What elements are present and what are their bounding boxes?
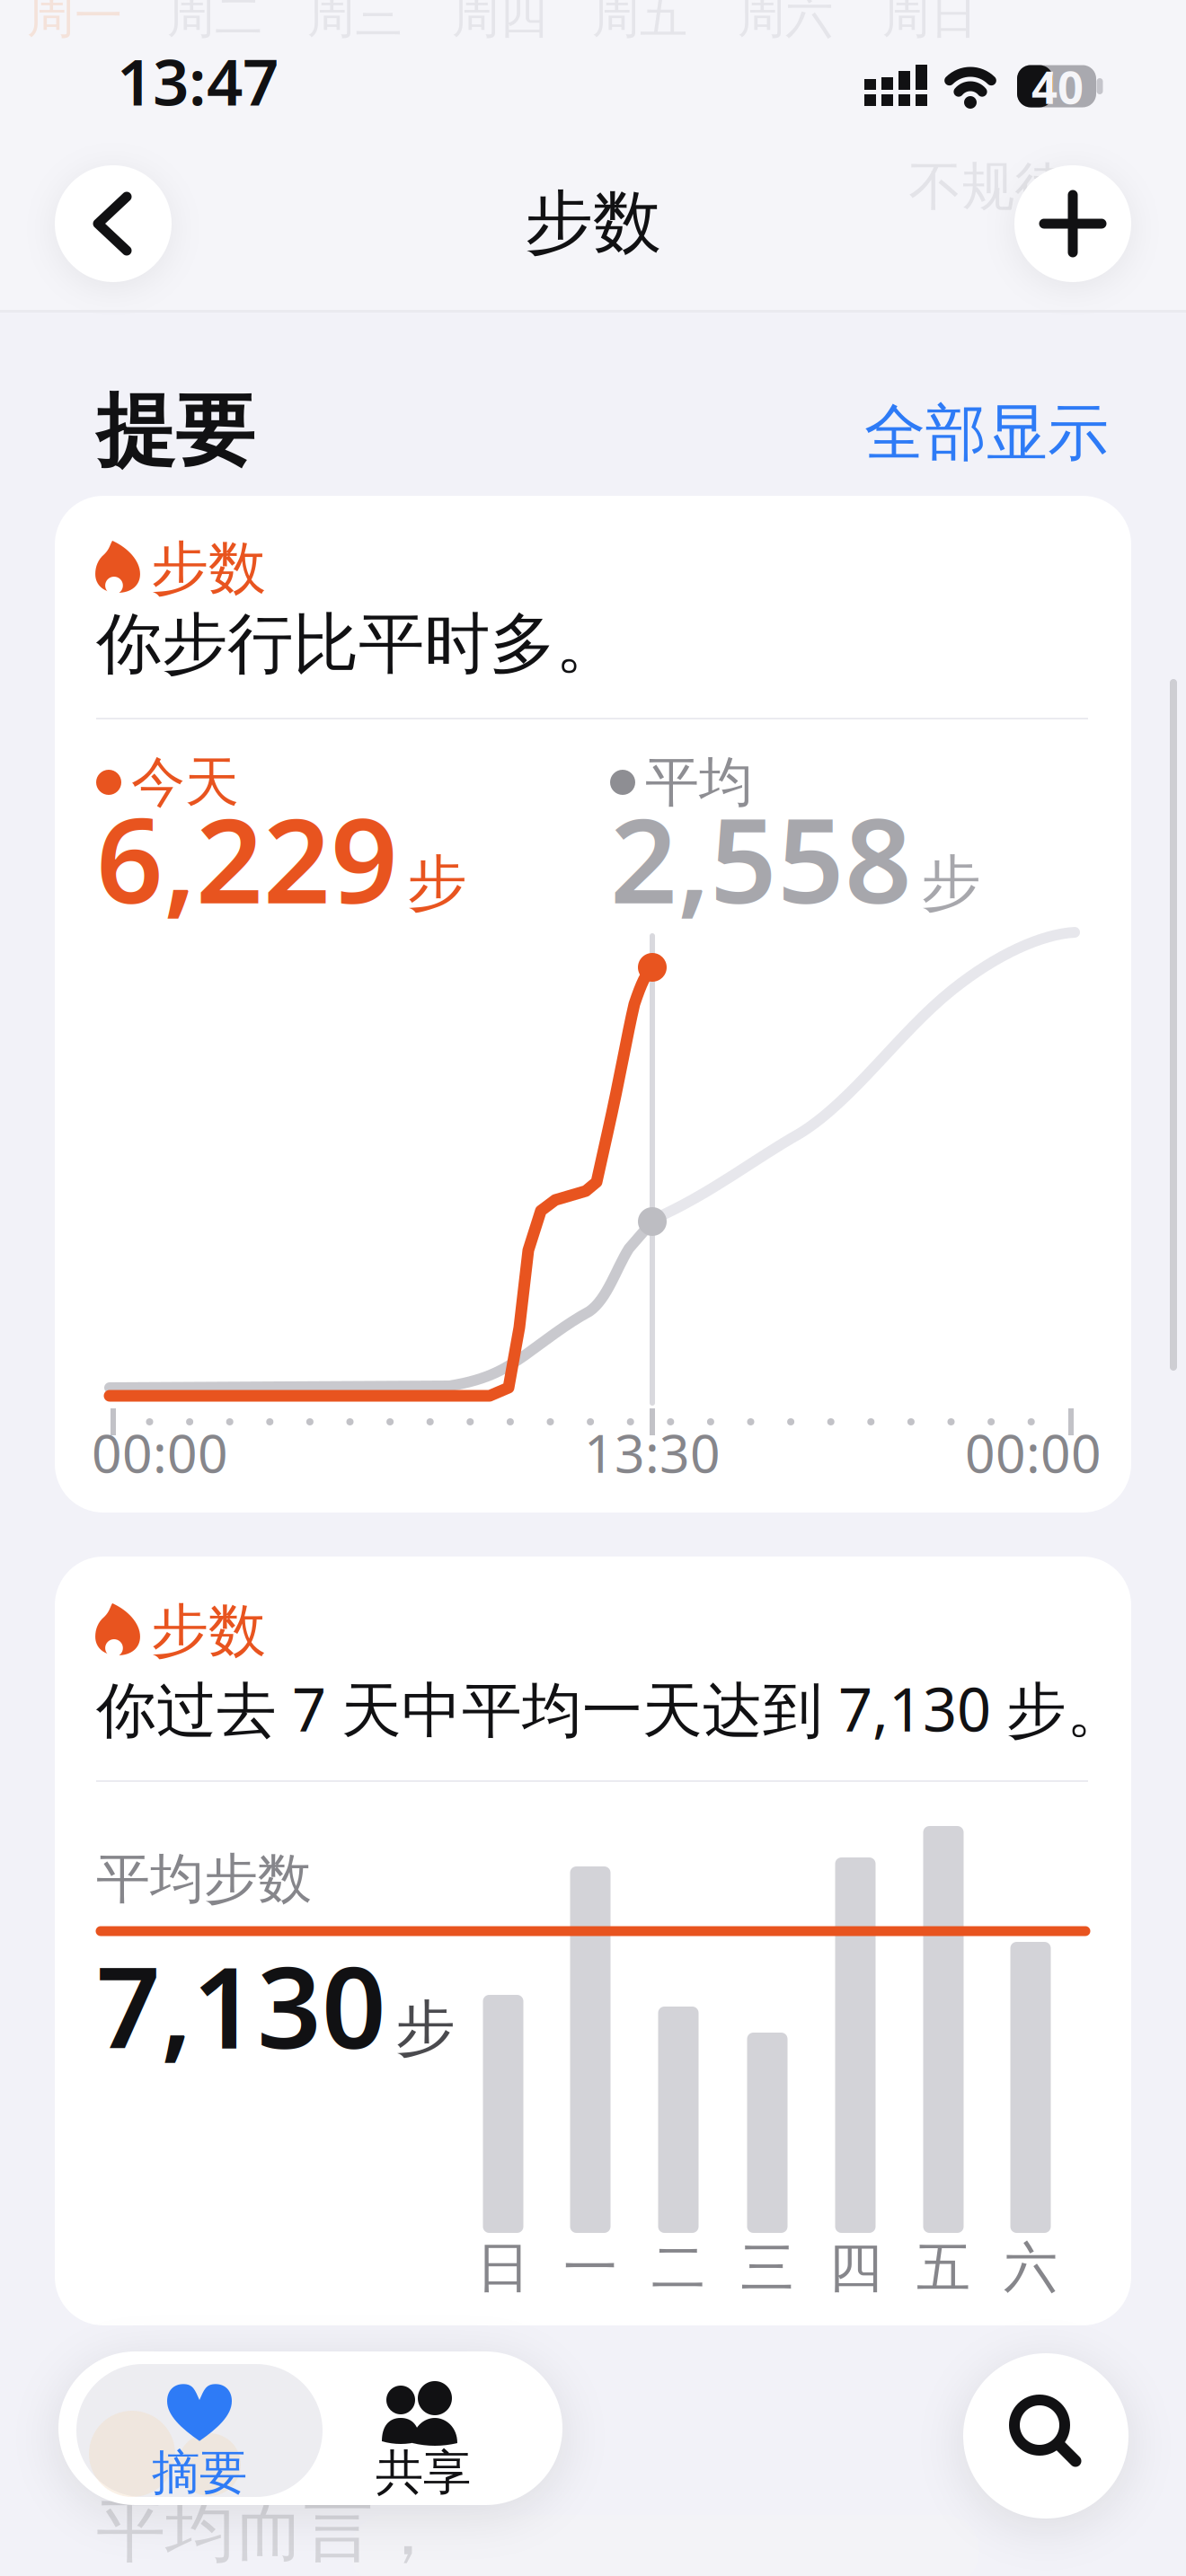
staticText: 全部显示	[864, 395, 1109, 470]
staticText: 6,229	[96, 780, 398, 936]
staticText: 周六	[738, 0, 833, 46]
button[interactable]: 共享	[318, 2364, 528, 2497]
staticText: 五	[916, 2235, 970, 2301]
staticText: 提要	[96, 383, 254, 480]
staticText: 共享	[376, 2443, 471, 2502]
staticText: 你步行比平时多。	[96, 604, 621, 685]
button[interactable]: 步数 — 你步行比平时多	[55, 496, 1131, 1513]
staticText: 今天	[131, 749, 239, 815]
staticText: 40	[1031, 56, 1084, 116]
staticText: 周日	[882, 0, 978, 46]
staticText: 13:47	[117, 39, 279, 123]
button[interactable]: 步数 — 过去 7 天平均 7,130 步	[55, 1557, 1131, 2325]
button[interactable]: Back	[55, 165, 172, 282]
staticText: 2,558	[610, 780, 912, 936]
staticText: 周二	[167, 0, 262, 46]
staticText: 步	[921, 847, 981, 920]
button[interactable]: Search	[963, 2353, 1128, 2519]
staticText: 日	[476, 2235, 530, 2301]
staticText: 平均而言，	[96, 2488, 442, 2574]
staticText: 13:30	[584, 1417, 721, 1487]
staticText: 你过去 7 天中平均一天达到 7,130 步。	[96, 1669, 1127, 1748]
staticText: 7,130	[96, 1930, 386, 2079]
staticText: 步数	[151, 1596, 266, 1666]
button[interactable]: 摘要	[76, 2364, 323, 2497]
button[interactable]: 全部显示	[864, 395, 1109, 470]
staticText: 周一	[27, 0, 122, 46]
button[interactable]: Add	[1014, 165, 1131, 282]
staticText: 平均步数	[96, 1846, 312, 1912]
staticText: 摘要	[152, 2443, 247, 2502]
staticText: 周三	[307, 0, 403, 46]
staticText: 步	[395, 1992, 456, 2065]
staticText: 步数	[525, 181, 661, 265]
staticText: 三	[740, 2235, 794, 2301]
staticText: 00:00	[92, 1417, 228, 1487]
staticText: 平均	[645, 749, 753, 815]
staticText: 六	[1004, 2235, 1058, 2301]
staticText: 二	[651, 2235, 705, 2301]
staticText: 步数	[151, 533, 266, 604]
staticText: 周四	[452, 0, 547, 46]
staticText: 不规律	[909, 154, 1068, 219]
staticText: 步	[407, 847, 467, 920]
staticText: 周五	[592, 0, 687, 46]
staticText: 四	[828, 2235, 882, 2301]
staticText: 00:00	[965, 1417, 1102, 1487]
staticText: 一	[563, 2235, 617, 2301]
